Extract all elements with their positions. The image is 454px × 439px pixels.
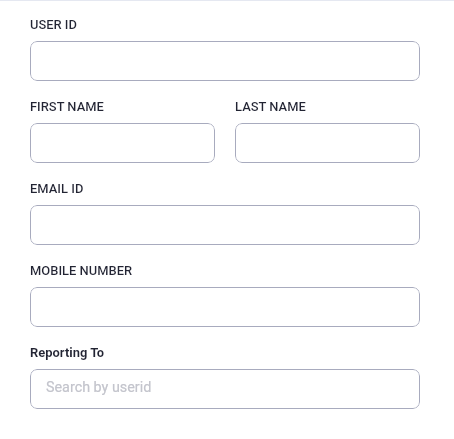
button[interactable]: User id xyxy=(30,41,420,81)
button[interactable]: Reporting to xyxy=(30,369,420,409)
staticText: FIRST NAME xyxy=(30,99,104,114)
staticText: Search by userid xyxy=(46,379,152,396)
button[interactable]: Mobile number xyxy=(30,287,420,327)
staticText: EMAIL ID xyxy=(30,181,84,196)
button[interactable]: First name xyxy=(30,123,215,163)
button[interactable]: Email id xyxy=(30,205,420,245)
staticText: Reporting To xyxy=(30,345,105,360)
staticText: LAST NAME xyxy=(235,99,306,114)
button[interactable]: Last name xyxy=(235,123,420,163)
staticText: USER ID xyxy=(30,17,77,32)
staticText: MOBILE NUMBER xyxy=(30,263,133,278)
